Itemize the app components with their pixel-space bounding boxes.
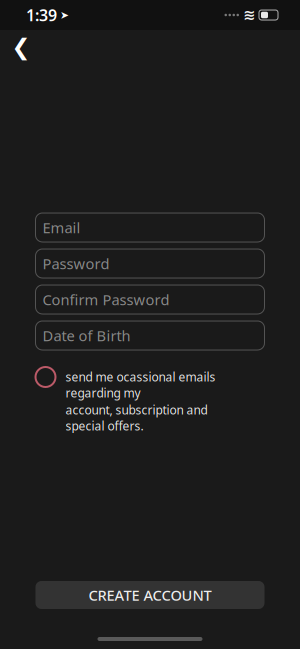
staticText: ❮ [11, 34, 30, 60]
button[interactable]: CREATE ACCOUNT [35, 581, 264, 609]
staticText: Password [42, 254, 109, 273]
button[interactable]: send me ocassional emails regarding my [35, 367, 264, 434]
staticText: Confirm Password [42, 290, 169, 309]
staticText: ➤ [60, 9, 69, 21]
staticText: CREATE ACCOUNT [88, 585, 211, 605]
staticText: ≋ [243, 7, 255, 23]
staticText: Date of Birth [42, 326, 130, 345]
staticText: 1:39 [26, 4, 57, 26]
staticText: account, subscription and special offers… [65, 402, 207, 434]
button[interactable]: Back [4, 30, 38, 64]
staticText: Email [42, 218, 80, 237]
staticText: send me ocassional emails regarding my [65, 369, 215, 401]
